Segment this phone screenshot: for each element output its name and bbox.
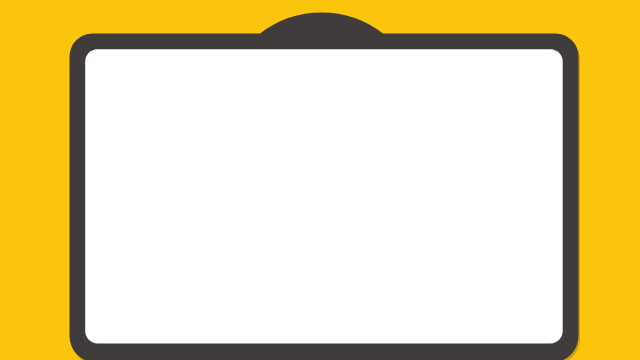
button[interactable]: Whiteboard <box>0 0 640 360</box>
